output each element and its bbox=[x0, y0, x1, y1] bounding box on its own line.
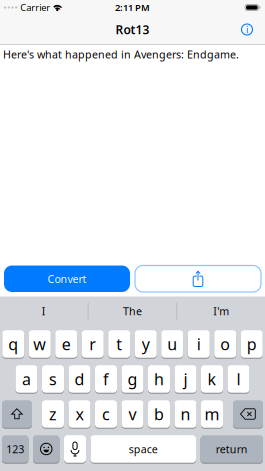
staticText: space bbox=[129, 442, 158, 456]
button[interactable]: h bbox=[148, 365, 170, 394]
staticText: k bbox=[207, 368, 216, 390]
staticText: s bbox=[49, 368, 57, 390]
staticText: d bbox=[74, 368, 84, 390]
button[interactable]: Share bbox=[135, 265, 261, 292]
button[interactable]: return bbox=[200, 435, 263, 464]
staticText: m bbox=[204, 403, 219, 425]
staticText: h bbox=[154, 368, 164, 390]
button[interactable]: c bbox=[95, 400, 117, 429]
staticText: Carrier bbox=[20, 1, 50, 14]
staticText: w bbox=[33, 333, 46, 355]
button[interactable]: e bbox=[55, 330, 77, 359]
button[interactable]: t bbox=[108, 330, 130, 359]
button[interactable]: o bbox=[214, 330, 236, 359]
button[interactable]: k bbox=[201, 365, 223, 394]
staticText: Convert bbox=[47, 272, 86, 286]
button[interactable]: s bbox=[42, 365, 64, 394]
button[interactable]: 123 bbox=[2, 435, 28, 464]
button[interactable]: Info bbox=[236, 15, 258, 44]
button[interactable]: v bbox=[121, 400, 143, 429]
button[interactable]: space bbox=[90, 435, 196, 464]
staticText: y bbox=[142, 333, 150, 355]
button[interactable]: p bbox=[241, 330, 263, 359]
staticText: Here's what happened in Avengers: Endgam… bbox=[3, 47, 239, 61]
button[interactable]: Emoji bbox=[33, 435, 59, 464]
staticText: 2:11 PM bbox=[115, 1, 150, 14]
button[interactable]: m bbox=[201, 400, 223, 429]
staticText: return bbox=[216, 442, 248, 456]
button[interactable]: r bbox=[82, 330, 104, 359]
staticText: 123 bbox=[6, 442, 24, 456]
button[interactable]: y bbox=[135, 330, 157, 359]
button[interactable]: g bbox=[121, 365, 143, 394]
button[interactable]: Shift bbox=[2, 400, 32, 429]
button[interactable]: w bbox=[29, 330, 51, 359]
staticText: c bbox=[102, 403, 110, 425]
staticText: u bbox=[167, 333, 177, 355]
staticText: n bbox=[180, 403, 190, 425]
button[interactable]: I bbox=[0, 304, 88, 318]
staticText: e bbox=[62, 333, 71, 355]
button[interactable]: q bbox=[2, 330, 24, 359]
button[interactable]: j bbox=[174, 365, 196, 394]
staticText: i bbox=[197, 333, 201, 355]
button[interactable]: u bbox=[161, 330, 183, 359]
staticText: i bbox=[246, 23, 248, 36]
staticText: Rot13 bbox=[115, 21, 149, 37]
button[interactable]: f bbox=[95, 365, 117, 394]
staticText: I'm bbox=[213, 304, 229, 318]
button[interactable]: l bbox=[227, 365, 249, 394]
staticText: q bbox=[8, 333, 18, 355]
staticText: b bbox=[154, 403, 164, 425]
button[interactable]: n bbox=[174, 400, 196, 429]
button[interactable]: The bbox=[89, 304, 176, 318]
button[interactable]: z bbox=[42, 400, 64, 429]
staticText: l bbox=[236, 368, 240, 390]
staticText: f bbox=[103, 368, 109, 390]
button[interactable]: x bbox=[68, 400, 90, 429]
staticText: z bbox=[49, 403, 57, 425]
button[interactable]: d bbox=[68, 365, 90, 394]
staticText: The bbox=[123, 304, 142, 318]
button[interactable]: Dictate bbox=[64, 435, 86, 464]
button[interactable]: Delete bbox=[233, 400, 263, 429]
button[interactable]: I'm bbox=[177, 304, 265, 318]
staticText: v bbox=[128, 403, 136, 425]
staticText: I bbox=[42, 304, 46, 318]
staticText: o bbox=[220, 333, 230, 355]
staticText: a bbox=[22, 368, 31, 390]
staticText: r bbox=[89, 333, 96, 355]
staticText: j bbox=[183, 368, 187, 390]
button[interactable]: b bbox=[148, 400, 170, 429]
staticText: g bbox=[127, 368, 137, 390]
staticText: p bbox=[247, 333, 257, 355]
button[interactable]: a bbox=[15, 365, 37, 394]
button[interactable]: i bbox=[188, 330, 210, 359]
staticText: x bbox=[75, 403, 83, 425]
staticText: t bbox=[116, 333, 122, 355]
button[interactable]: Convert bbox=[4, 265, 130, 292]
